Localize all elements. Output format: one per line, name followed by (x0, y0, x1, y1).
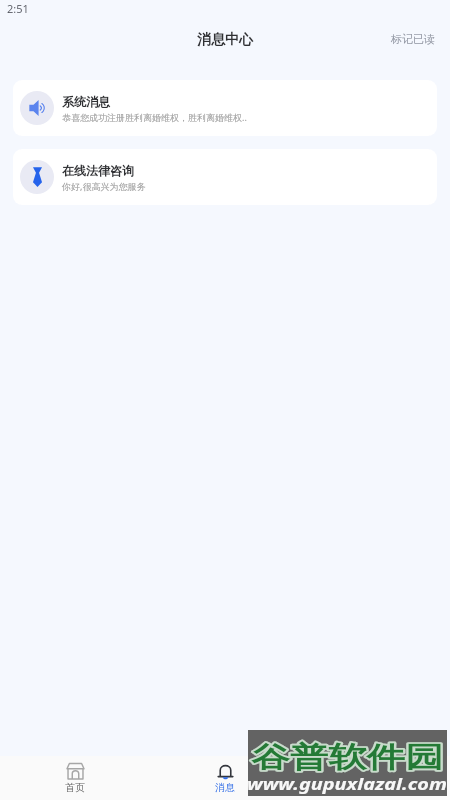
staticText: 我的 (365, 781, 385, 794)
button[interactable]: 系统消息 (13, 80, 437, 136)
staticText: 你好,很高兴为您服务 (62, 180, 146, 192)
button[interactable]: 在线法律咨询 (13, 149, 437, 205)
staticText: 消息中心 (197, 31, 253, 49)
staticText: 标记已读 (391, 32, 435, 46)
staticText: 首页 (65, 781, 85, 794)
button[interactable]: 首页 (0, 756, 150, 800)
button[interactable]: 我的 (300, 756, 450, 800)
staticText: 2:51 (7, 1, 29, 16)
staticText: 在线法律咨询 (62, 163, 134, 178)
button[interactable]: 标记已读 (377, 22, 450, 52)
button[interactable]: 消息 (150, 756, 300, 800)
staticText: 系统消息 (62, 94, 110, 109)
staticText: 恭喜您成功注册胜利离婚维权，胜利离婚维权.. (62, 111, 247, 123)
staticText: 消息 (215, 781, 235, 794)
